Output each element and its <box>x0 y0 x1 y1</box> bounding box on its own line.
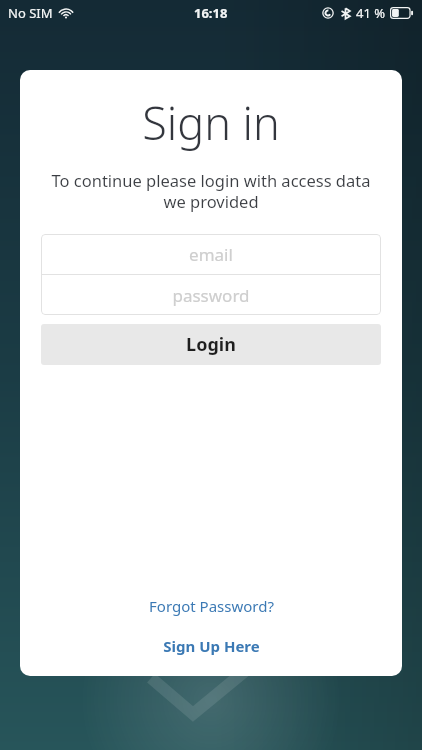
button[interactable]: Login <box>41 324 381 365</box>
staticText: 41 % <box>356 4 386 22</box>
staticText: Forgot Password? <box>149 596 274 616</box>
button[interactable]: email <box>41 234 381 274</box>
button[interactable]: Forgot Password? <box>20 590 402 622</box>
staticText: Sign Up Here <box>163 636 260 656</box>
staticText: To continue please login with access dat… <box>30 169 392 213</box>
staticText: 16:18 <box>194 4 228 22</box>
staticText: email <box>189 243 233 266</box>
staticText: No SIM <box>8 4 53 22</box>
staticText: Sign in <box>20 92 402 153</box>
button[interactable]: password <box>41 275 381 315</box>
staticText: password <box>172 284 250 307</box>
button[interactable]: Sign Up Here <box>20 630 402 662</box>
staticText: Login <box>186 332 236 357</box>
